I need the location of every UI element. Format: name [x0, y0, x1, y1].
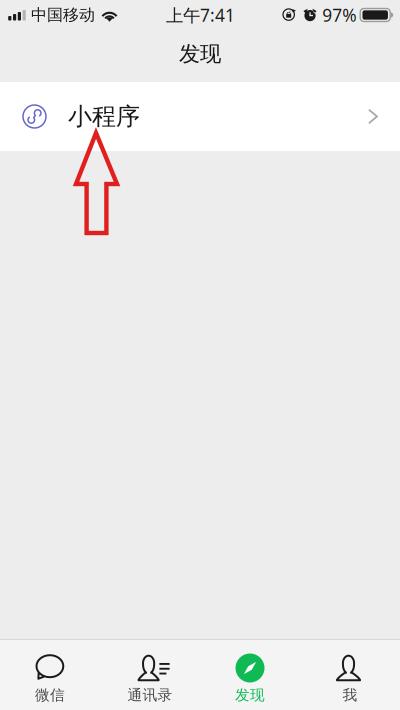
staticText: 发现 [235, 686, 265, 704]
staticText: 中国移动 [31, 5, 95, 25]
staticText: 上午7:41 [166, 3, 235, 26]
button[interactable]: 微信 [0, 640, 100, 710]
staticText: 发现 [179, 41, 221, 67]
button[interactable]: 通讯录 [100, 640, 200, 710]
button[interactable]: 我 [300, 640, 400, 710]
button[interactable]: 发现 [200, 640, 300, 710]
staticText: 通讯录 [127, 686, 172, 704]
staticText: 我 [342, 686, 357, 704]
button[interactable]: 小程序 [0, 82, 400, 151]
staticText: 97% [322, 3, 356, 26]
staticText: 小程序 [68, 102, 140, 131]
staticText: 微信 [35, 686, 65, 704]
